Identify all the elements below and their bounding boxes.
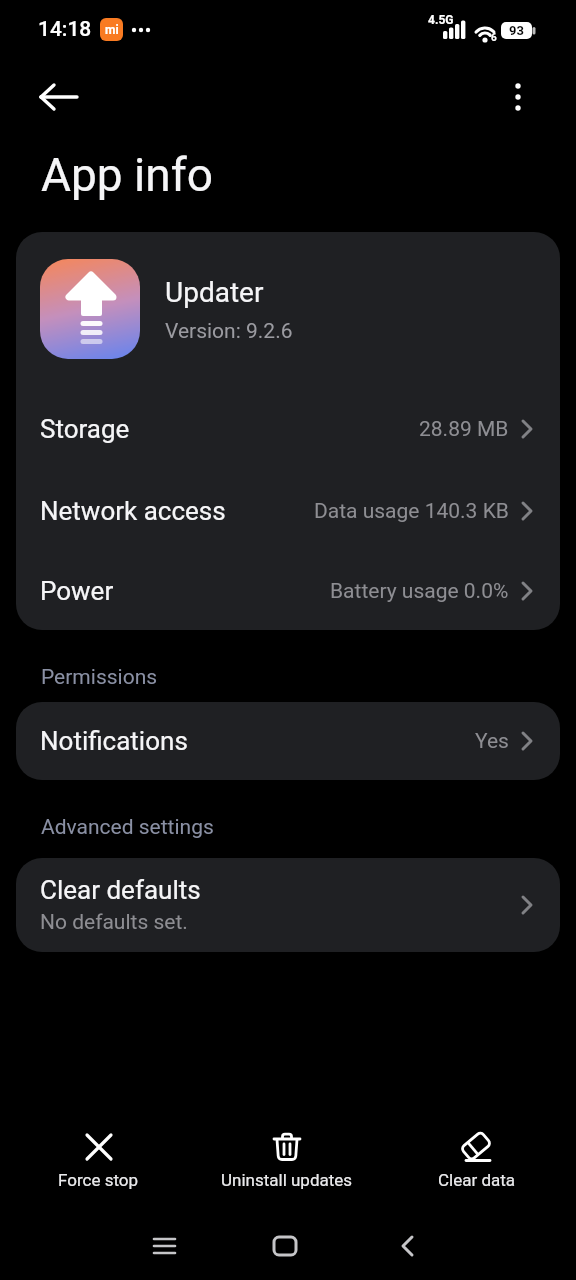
button[interactable] <box>500 74 536 120</box>
staticText: Advanced settings <box>41 815 214 840</box>
staticText: 93 <box>509 23 524 38</box>
staticText: 14:18 <box>38 17 92 42</box>
button[interactable]: Force stop <box>18 1131 178 1190</box>
staticText: 28.89 MB <box>419 417 509 442</box>
staticText: Updater <box>165 276 264 309</box>
button[interactable]: Uninstall updates <box>207 1131 367 1190</box>
staticText: Clear data <box>438 1170 516 1190</box>
staticText: No defaults set. <box>40 910 188 935</box>
staticText: Battery usage 0.0% <box>330 579 509 604</box>
staticText: Power <box>40 576 114 606</box>
staticText: 6 <box>491 32 497 44</box>
button[interactable] <box>26 72 90 122</box>
staticText: 4.5G <box>428 13 454 27</box>
button[interactable]: Power <box>16 552 560 630</box>
staticText: Clear defaults <box>40 875 201 905</box>
button[interactable] <box>377 1226 437 1266</box>
staticText: mi <box>105 23 119 37</box>
staticText: Data usage 140.3 KB <box>314 499 509 524</box>
staticText: Storage <box>40 414 130 444</box>
staticText: Yes <box>475 729 509 754</box>
staticText: Force stop <box>58 1170 139 1190</box>
button[interactable] <box>255 1226 315 1266</box>
staticText: Network access <box>40 496 226 526</box>
staticText: Permissions <box>41 665 158 690</box>
button[interactable]: Notifications <box>16 702 560 780</box>
staticText: Notifications <box>40 726 188 756</box>
button[interactable]: Network access <box>16 470 560 552</box>
staticText: Uninstall updates <box>221 1170 353 1190</box>
staticText: Version: 9.2.6 <box>165 319 293 344</box>
button[interactable]: Clear data <box>397 1131 557 1190</box>
button[interactable]: Storage <box>16 388 560 470</box>
button[interactable]: Clear defaults <box>16 858 560 952</box>
staticText: App info <box>41 148 213 202</box>
button[interactable] <box>135 1226 195 1266</box>
